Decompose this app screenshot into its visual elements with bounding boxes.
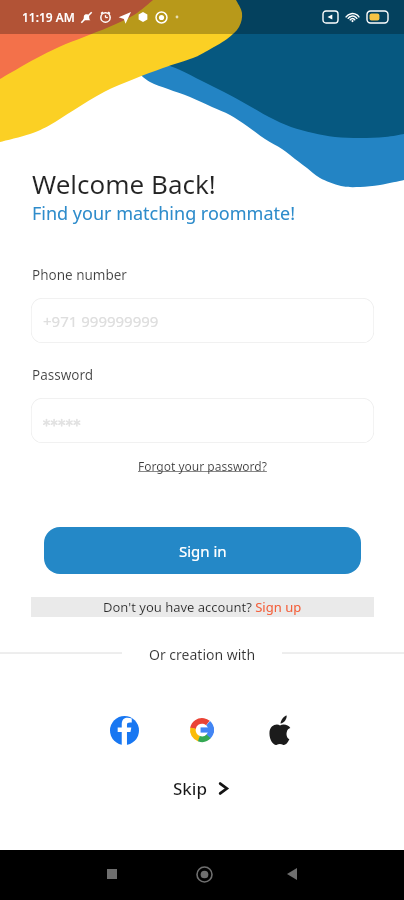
button[interactable] bbox=[31, 398, 374, 443]
button[interactable]: Sign in with Apple bbox=[257, 707, 303, 753]
staticText: Password bbox=[32, 366, 94, 384]
button[interactable]: Sign in bbox=[44, 527, 361, 574]
button[interactable]: Don't you have account? Sign up bbox=[31, 597, 374, 617]
staticText: Phone number bbox=[32, 266, 127, 284]
staticText: 11:19 AM bbox=[22, 9, 75, 25]
staticText: Welcome Back! bbox=[32, 166, 216, 201]
button[interactable]: Sign in with Google bbox=[179, 707, 225, 753]
button[interactable]: +971 999999999 bbox=[31, 298, 374, 343]
button[interactable]: Back bbox=[270, 852, 314, 896]
button[interactable]: Forgot your password? bbox=[133, 455, 272, 477]
staticText: Sign in bbox=[179, 541, 227, 561]
button[interactable]: Skip bbox=[163, 772, 241, 805]
staticText: Skip bbox=[173, 777, 207, 800]
staticText: Find your matching roommate! bbox=[32, 201, 295, 226]
button[interactable]: Home bbox=[182, 852, 226, 896]
staticText: Forgot your password? bbox=[138, 458, 267, 474]
button[interactable]: Recent apps bbox=[90, 852, 134, 896]
staticText: Or creation with bbox=[149, 645, 256, 664]
button[interactable]: Sign in with Facebook bbox=[101, 707, 147, 753]
staticText: Don't you have account? Sign up bbox=[103, 598, 302, 616]
staticText: +971 999999999 bbox=[43, 311, 159, 331]
